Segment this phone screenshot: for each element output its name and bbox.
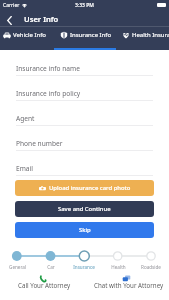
- button[interactable]: Save and Continue: [15, 201, 154, 217]
- button[interactable]: Insurance info name: [0, 51, 169, 76]
- staticText: Insurance info name: [16, 64, 80, 73]
- staticText: Carrier: [3, 2, 20, 9]
- staticText: Health: [111, 264, 126, 270]
- staticText: Agent: [16, 114, 35, 123]
- staticText: Email: [16, 164, 33, 173]
- button[interactable]: Insurance info policy: [0, 76, 169, 101]
- button[interactable]: Vehicle Info: [3, 30, 46, 40]
- staticText: Insurance: [73, 264, 95, 270]
- staticText: Car: [47, 264, 55, 270]
- button[interactable]: Upload insurance card photo: [15, 180, 154, 196]
- staticText: Insurance info policy: [16, 89, 81, 98]
- button[interactable]: Phone number: [0, 126, 169, 151]
- button[interactable]: Chat with Your Attorney: [84, 270, 169, 300]
- button[interactable]: Back: [1, 12, 17, 28]
- staticText: Health Insurance: [132, 31, 169, 39]
- staticText: Vehicle Info: [13, 31, 46, 39]
- staticText: Chat with Your Attorney: [94, 281, 164, 289]
- staticText: 3:33 PM: [75, 2, 94, 9]
- staticText: Call Your Attorney: [18, 281, 71, 289]
- staticText: Roadside: [141, 264, 161, 270]
- staticText: Phone number: [16, 139, 63, 148]
- staticText: Skip: [79, 226, 91, 234]
- button[interactable]: Agent: [0, 101, 169, 126]
- staticText: Insurance Info: [70, 31, 112, 39]
- button[interactable]: Skip: [15, 222, 154, 238]
- staticText: General: [9, 264, 26, 270]
- button[interactable]: Insurance Info: [60, 30, 112, 40]
- button[interactable]: Call Your Attorney: [0, 270, 84, 300]
- staticText: Save and Continue: [58, 205, 111, 213]
- button[interactable]: Health Insurance: [122, 30, 169, 40]
- staticText: Upload insurance card photo: [49, 184, 131, 192]
- button[interactable]: Email: [0, 151, 169, 176]
- staticText: User Info: [24, 14, 59, 24]
